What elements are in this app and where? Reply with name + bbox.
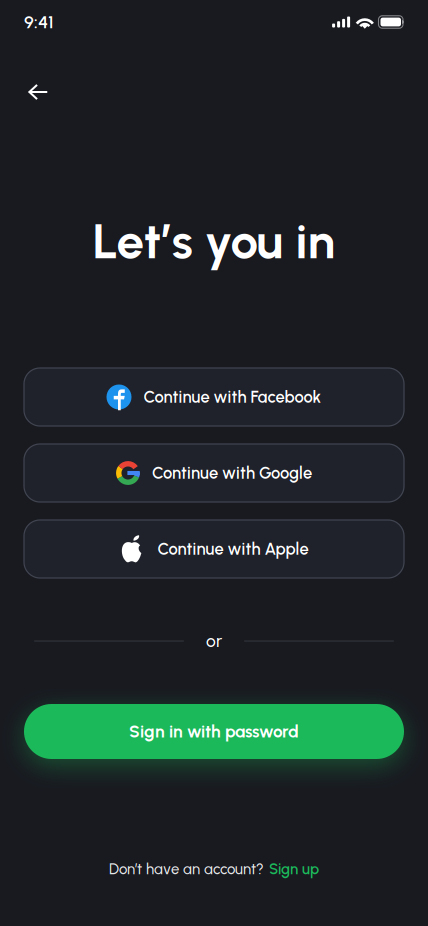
button[interactable]: Continue with Facebook	[24, 368, 404, 426]
button[interactable]: Sign up	[269, 860, 319, 878]
staticText: Sign in with password	[129, 721, 299, 742]
staticText: Continue with Apple	[157, 539, 308, 559]
staticText: or	[206, 631, 222, 651]
staticText: Don’t have an account?	[109, 860, 264, 878]
staticText: Continue with Google	[152, 463, 312, 483]
button[interactable]: Continue with Google	[24, 444, 404, 502]
button[interactable]: Back	[16, 70, 60, 114]
button[interactable]: Sign in with password	[24, 704, 404, 759]
staticText: Sign up	[269, 860, 319, 878]
staticText: Let’s you in	[92, 211, 335, 271]
staticText: 9:41	[24, 11, 54, 33]
button[interactable]: Continue with Apple	[24, 520, 404, 578]
staticText: Continue with Facebook	[143, 387, 321, 407]
